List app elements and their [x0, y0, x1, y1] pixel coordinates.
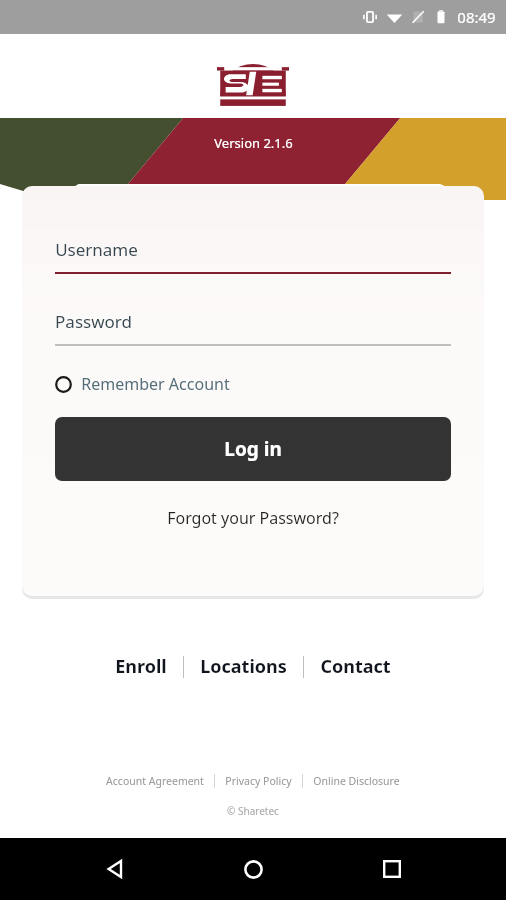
staticText: Enroll	[115, 654, 167, 679]
staticText: Username	[55, 238, 138, 261]
staticText: Remember Account	[81, 373, 230, 395]
button[interactable]: Privacy Policy	[215, 770, 302, 792]
staticText: Privacy Policy	[225, 774, 292, 788]
button[interactable]: Contact	[304, 646, 407, 687]
staticText: Version 2.1.6	[214, 134, 293, 152]
staticText: Account Agreement	[106, 774, 204, 788]
button[interactable]: Recent apps	[368, 845, 416, 893]
button[interactable]: Online Disclosure	[303, 770, 410, 792]
staticText: Online Disclosure	[313, 774, 400, 788]
button[interactable]: Account Agreement	[96, 770, 214, 792]
button[interactable]: Log in	[55, 417, 451, 481]
button[interactable]: Password	[55, 310, 451, 346]
button[interactable]: Username	[55, 238, 451, 274]
staticText: Contact	[320, 654, 391, 679]
staticText: Locations	[200, 654, 287, 679]
button[interactable]: Remember Account	[55, 373, 230, 395]
staticText: Forgot your Password?	[167, 507, 339, 529]
staticText: Log in	[224, 436, 282, 462]
staticText: 08:49	[457, 7, 496, 27]
button[interactable]: Back	[91, 845, 139, 893]
staticText: Password	[55, 310, 132, 333]
button[interactable]: Locations	[184, 646, 303, 687]
staticText: © Sharetec	[227, 804, 279, 818]
button[interactable]: Home	[229, 845, 277, 893]
button[interactable]: Forgot your Password?	[161, 503, 345, 533]
button[interactable]: Enroll	[99, 646, 183, 687]
